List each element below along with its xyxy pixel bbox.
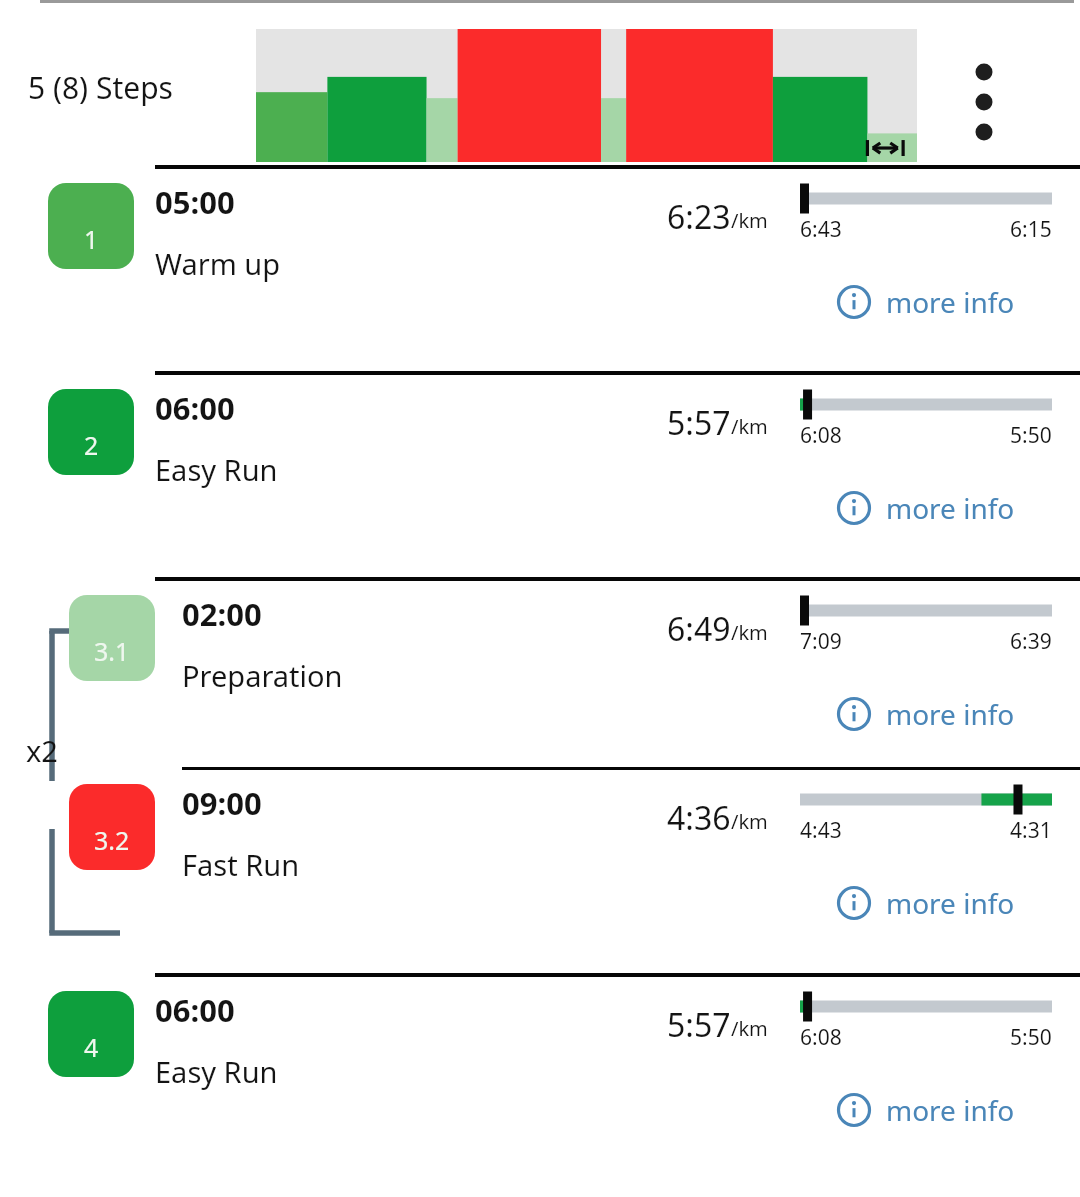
staticText: 6:23 [667, 195, 731, 239]
button[interactable]: Workout profile chart [256, 29, 917, 162]
button[interactable]: 3.2 [0, 770, 1080, 973]
staticText: 1 [84, 222, 99, 256]
staticText: Easy Run [155, 450, 278, 489]
button[interactable]: more info [836, 271, 1015, 333]
button[interactable]: 2 [0, 375, 1080, 577]
staticText: 2 [84, 428, 99, 462]
button[interactable]: more info [836, 683, 1015, 745]
staticText: 6:08 [800, 1023, 842, 1052]
staticText: 05:00 [155, 181, 235, 223]
staticText: more info [886, 1091, 1015, 1129]
staticText: 5:57 [667, 401, 731, 445]
staticText: 4:43 [800, 816, 842, 845]
button[interactable]: more info [836, 1079, 1015, 1141]
staticText: Easy Run [155, 1052, 278, 1091]
button[interactable]: More options [948, 51, 1020, 151]
staticText: 5:50 [1010, 421, 1052, 450]
staticText: 4:36 [667, 796, 731, 840]
staticText: /km [731, 619, 768, 646]
staticText: 7:09 [800, 627, 842, 656]
staticText: 09:00 [182, 782, 262, 824]
staticText: Fast Run [182, 845, 300, 884]
staticText: /km [731, 1015, 768, 1042]
staticText: 4:31 [1010, 816, 1052, 845]
staticText: 06:00 [155, 387, 235, 429]
staticText: 4 [84, 1030, 99, 1064]
staticText: 02:00 [182, 593, 262, 635]
button[interactable]: 3.1 [0, 581, 1080, 767]
staticText: 6:15 [1010, 215, 1052, 244]
staticText: 6:49 [667, 607, 731, 651]
staticText: Preparation [182, 656, 343, 695]
staticText: more info [886, 283, 1015, 321]
staticText: 5 (8) Steps [28, 67, 173, 108]
staticText: 5:50 [1010, 1023, 1052, 1052]
staticText: 3.1 [94, 634, 130, 668]
button[interactable]: 1 [0, 169, 1080, 371]
staticText: 06:00 [155, 989, 235, 1031]
button[interactable]: more info [836, 872, 1015, 934]
staticText: /km [731, 413, 768, 440]
staticText: more info [886, 695, 1015, 733]
staticText: more info [886, 489, 1015, 527]
staticText: 3.2 [94, 823, 130, 857]
staticText: 6:08 [800, 421, 842, 450]
staticText: x2 [26, 731, 58, 770]
button[interactable]: 4 [0, 977, 1080, 1179]
staticText: /km [731, 808, 768, 835]
staticText: /km [731, 207, 768, 234]
staticText: 5:57 [667, 1003, 731, 1047]
button[interactable]: more info [836, 477, 1015, 539]
staticText: more info [886, 884, 1015, 922]
staticText: 6:43 [800, 215, 842, 244]
staticText: Warm up [155, 244, 281, 283]
staticText: 6:39 [1010, 627, 1052, 656]
